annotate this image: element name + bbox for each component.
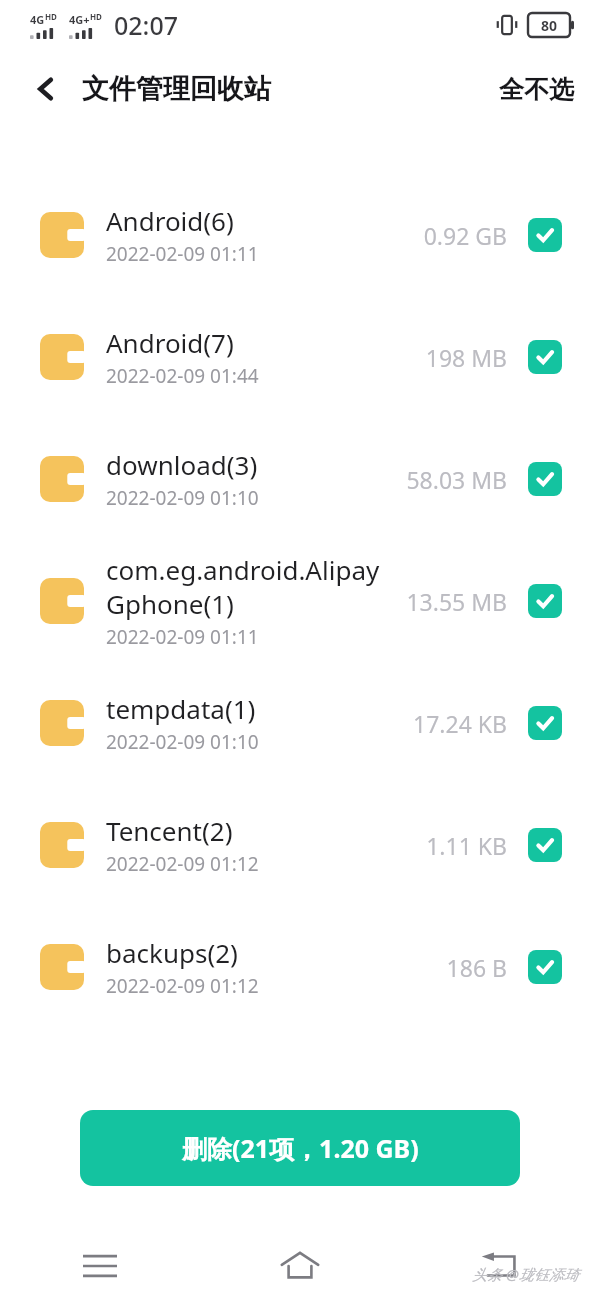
staticText: 1.11 KB	[426, 830, 507, 861]
button[interactable]: Recent apps	[0, 1232, 200, 1300]
staticText: download(3)	[106, 447, 258, 482]
staticText: Android(7)	[106, 325, 234, 360]
button[interactable]: Tencent(2)	[0, 784, 600, 906]
button[interactable]: Selected	[528, 340, 562, 374]
staticText: 13.55 MB	[406, 586, 507, 617]
staticText: 2022-02-09 01:12	[106, 973, 259, 999]
staticText: 17.24 KB	[413, 708, 507, 739]
staticText: Tencent(2)	[106, 813, 233, 848]
button[interactable]: Android(7)	[0, 296, 600, 418]
button[interactable]: Selected	[528, 828, 562, 862]
staticText: tempdata(1)	[106, 691, 256, 726]
staticText: 2022-02-09 01:11	[106, 241, 259, 267]
staticText: HD	[45, 11, 57, 22]
button[interactable]: download(3)	[0, 418, 600, 540]
staticText: 文件管理回收站	[82, 72, 271, 106]
button[interactable]: Android(6)	[0, 174, 600, 296]
button[interactable]: Selected	[528, 462, 562, 496]
staticText: HD	[90, 11, 102, 22]
staticText: 2022-02-09 01:11	[106, 624, 259, 650]
staticText: 02:07	[114, 8, 179, 42]
staticText: 2022-02-09 01:44	[106, 363, 259, 389]
staticText: 头条 @珑钰添琦	[472, 1264, 579, 1284]
staticText: 0.92 GB	[423, 220, 507, 251]
staticText: 全不选	[499, 74, 574, 105]
staticText: Android(6)	[106, 203, 234, 238]
staticText: 58.03 MB	[406, 464, 507, 495]
staticText: 186 B	[446, 952, 507, 983]
button[interactable]: Back	[22, 65, 70, 113]
button[interactable]: backups(2)	[0, 906, 600, 1028]
staticText: 2022-02-09 01:10	[106, 485, 259, 511]
staticText: 2022-02-09 01:12	[106, 851, 259, 877]
button[interactable]: Back	[400, 1232, 600, 1300]
button[interactable]: Selected	[528, 218, 562, 252]
staticText: 删除(21项，1.20 GB)	[182, 1131, 419, 1165]
staticText: backups(2)	[106, 935, 238, 970]
button[interactable]: com.eg.android.AlipayGphone(1)	[0, 540, 600, 662]
button[interactable]: 删除(21项，1.20 GB)	[80, 1110, 520, 1186]
button[interactable]: 全不选	[487, 66, 586, 113]
button[interactable]: Home	[200, 1232, 400, 1300]
button[interactable]: Selected	[528, 706, 562, 740]
staticText: 198 MB	[425, 342, 507, 373]
button[interactable]: Selected	[528, 584, 562, 618]
staticText: 2022-02-09 01:10	[106, 729, 259, 755]
staticText: 80	[541, 16, 558, 35]
button[interactable]: tempdata(1)	[0, 662, 600, 784]
staticText: com.eg.android.AlipayGphone(1)	[106, 552, 396, 621]
staticText: 4G+	[69, 12, 90, 27]
staticText: 4G	[30, 12, 45, 27]
button[interactable]: Selected	[528, 950, 562, 984]
